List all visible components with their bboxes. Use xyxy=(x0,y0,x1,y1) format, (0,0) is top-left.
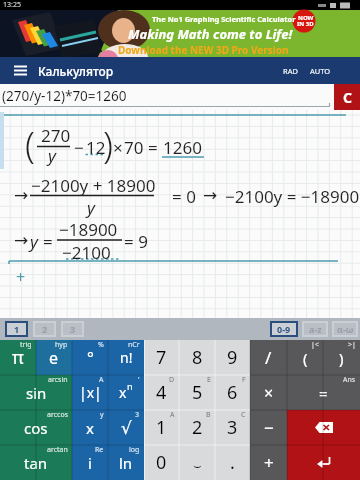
staticText: ) xyxy=(339,348,344,368)
button[interactable]: |< xyxy=(287,340,323,375)
button[interactable]: F xyxy=(215,375,250,410)
button[interactable]: % xyxy=(72,340,108,375)
staticText: ° xyxy=(87,347,94,369)
staticText: C xyxy=(241,410,246,420)
button[interactable]: × xyxy=(250,375,287,410)
staticText: trig xyxy=(20,340,32,350)
button[interactable]: AUTO xyxy=(310,66,331,76)
staticText: −2100y + 18900 xyxy=(31,174,156,197)
staticText: Калькулятор xyxy=(38,63,114,79)
staticText: 1 xyxy=(14,323,20,335)
staticText: hyp xyxy=(55,340,68,350)
button[interactable]: A xyxy=(72,375,108,410)
staticText: 3 xyxy=(227,415,238,440)
staticText: >| xyxy=(348,340,356,350)
button[interactable] xyxy=(0,57,27,84)
staticText: 3 xyxy=(135,410,140,420)
button[interactable]: y xyxy=(72,410,108,445)
staticText: y xyxy=(100,410,104,420)
staticText: −18900 xyxy=(59,218,118,241)
staticText: (270/y-12)*70=1260 xyxy=(2,87,127,105)
staticText: α-ω xyxy=(337,323,354,335)
staticText: − xyxy=(264,416,274,439)
staticText: A xyxy=(99,375,104,385)
staticText: + xyxy=(264,451,274,474)
button[interactable]: − xyxy=(250,410,287,445)
staticText: 8 xyxy=(192,345,203,370)
button[interactable]: Re xyxy=(72,445,108,480)
staticText: 13:25 xyxy=(3,0,21,10)
staticText: The No1 Graphing Scientific Calculator xyxy=(152,14,296,24)
button[interactable]: hyp xyxy=(36,340,72,375)
staticText: Download the NEW 3D Pro Version xyxy=(118,43,289,57)
staticText: → xyxy=(14,230,29,250)
button[interactable]: log xyxy=(108,445,144,480)
button[interactable]: E xyxy=(179,375,215,410)
button[interactable]: nCr xyxy=(108,340,144,375)
button[interactable]: ⌣ xyxy=(179,445,215,480)
staticText: a-z xyxy=(309,323,322,335)
button[interactable]: 3 xyxy=(63,323,82,335)
staticText: IN 3D xyxy=(297,20,314,28)
staticText: y xyxy=(30,230,38,253)
staticText: y xyxy=(87,196,95,219)
button[interactable]: . xyxy=(215,445,250,480)
staticText: ⌣ xyxy=(193,460,202,473)
button[interactable] xyxy=(287,445,360,480)
button[interactable]: A xyxy=(144,410,179,445)
button[interactable] xyxy=(287,410,360,445)
button[interactable]: D xyxy=(144,375,179,410)
button[interactable]: ' xyxy=(108,375,144,410)
staticText: −2100y = −18900 xyxy=(225,185,360,208)
button[interactable]: 7 xyxy=(144,340,179,375)
button[interactable]: B xyxy=(179,410,215,445)
staticText: Making Math come to Life! xyxy=(128,25,293,43)
button[interactable]: + xyxy=(250,445,287,480)
staticText: . xyxy=(230,450,235,475)
button[interactable]: 0-9 xyxy=(272,323,296,335)
button[interactable]: 3 xyxy=(108,410,144,445)
staticText: tan xyxy=(24,453,48,473)
staticText: + xyxy=(16,266,26,288)
button[interactable]: a-z xyxy=(304,323,326,335)
staticText: × xyxy=(113,136,123,159)
button[interactable]: Ans xyxy=(287,375,360,410)
staticText: 4 xyxy=(156,380,167,405)
button[interactable]: 9 xyxy=(215,340,250,375)
button[interactable]: 1 xyxy=(7,323,26,335)
button[interactable]: arctan xyxy=(0,445,72,480)
staticText: 6 xyxy=(227,380,238,405)
staticText: 3 xyxy=(70,323,76,335)
button[interactable]: 2 xyxy=(35,323,54,335)
staticText: D xyxy=(169,375,175,385)
staticText: ln xyxy=(119,453,133,473)
button[interactable]: arccos xyxy=(0,410,72,445)
staticText: → xyxy=(14,185,29,205)
staticText: nCr xyxy=(128,340,140,350)
button[interactable]: RAD xyxy=(283,66,298,76)
staticText: 270 xyxy=(41,124,71,147)
staticText: / xyxy=(265,346,272,369)
button[interactable]: arcsin xyxy=(0,375,72,410)
button[interactable]: C xyxy=(215,410,250,445)
staticText: |x| xyxy=(79,383,102,402)
button[interactable]: 8 xyxy=(179,340,215,375)
staticText: 9 xyxy=(227,345,238,370)
staticText: arccos xyxy=(47,410,68,420)
button[interactable]: trig xyxy=(0,340,36,375)
button[interactable]: >| xyxy=(323,340,360,375)
staticText: sin xyxy=(26,383,47,403)
button[interactable]: The No1 Graphing Scientific Calculator xyxy=(0,10,360,57)
staticText: log xyxy=(129,445,140,455)
staticText: × xyxy=(264,382,274,404)
button[interactable]: 0 xyxy=(144,445,179,480)
button[interactable]: α-ω xyxy=(334,323,356,335)
staticText: x xyxy=(119,383,127,402)
button[interactable]: C xyxy=(334,84,360,110)
staticText: → xyxy=(203,185,218,205)
staticText: − xyxy=(74,136,84,159)
button[interactable]: / xyxy=(250,340,287,375)
staticText: NOW xyxy=(298,14,314,22)
staticText: cos xyxy=(24,418,48,438)
staticText: = 9 xyxy=(124,230,148,253)
